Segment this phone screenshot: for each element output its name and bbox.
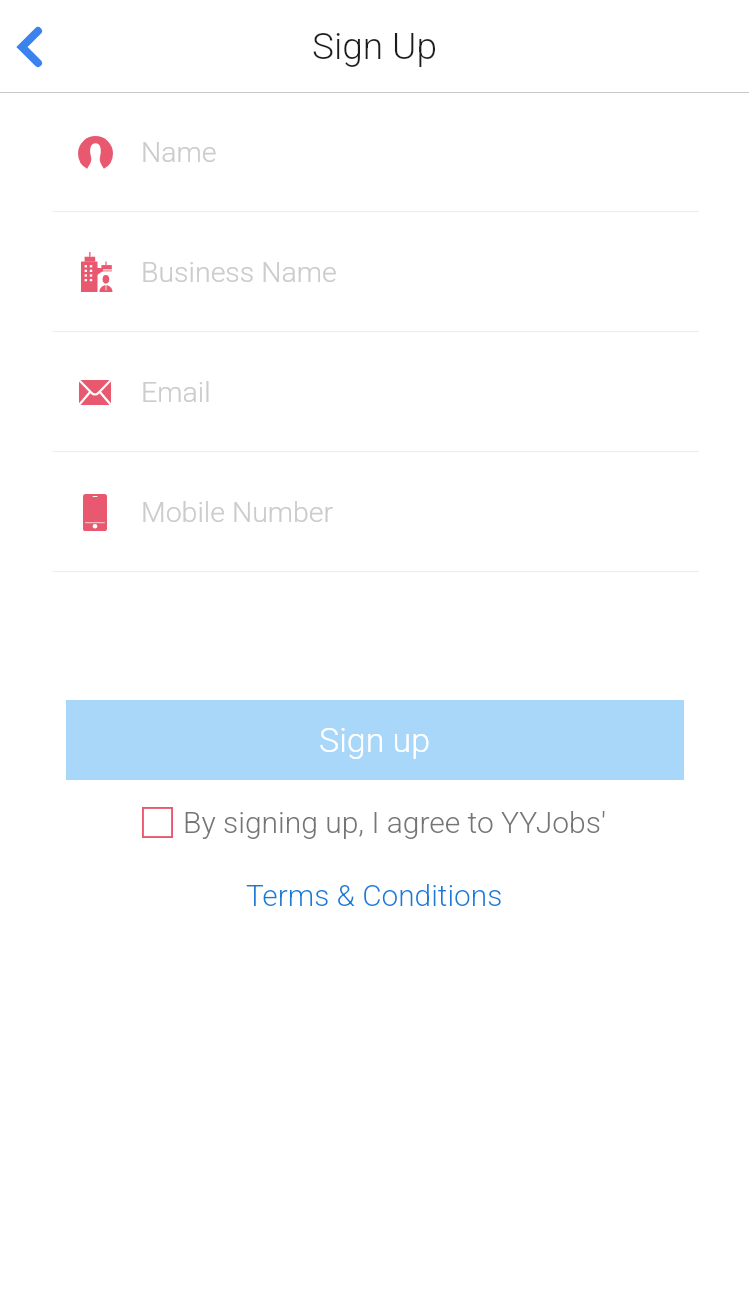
button[interactable]: Name	[0, 93, 749, 212]
button[interactable]: Sign up	[66, 700, 684, 780]
staticText: Sign up	[319, 720, 431, 760]
button[interactable]: Email	[0, 332, 749, 452]
staticText: By signing up, I agree to YYJobs'	[183, 805, 607, 840]
staticText: Email	[141, 376, 211, 409]
staticText: Business Name	[141, 256, 337, 289]
button[interactable]: Back	[0, 1, 78, 93]
button[interactable]: Agree to terms checkbox	[142, 807, 173, 838]
staticText: Sign Up	[312, 25, 437, 68]
staticText: Mobile Number	[141, 496, 334, 529]
staticText: Name	[141, 136, 217, 169]
button[interactable]: Business Name	[0, 212, 749, 332]
button[interactable]: Terms & Conditions	[240, 874, 509, 917]
button[interactable]: Mobile Number	[0, 452, 749, 572]
staticText: Terms & Conditions	[246, 878, 503, 913]
